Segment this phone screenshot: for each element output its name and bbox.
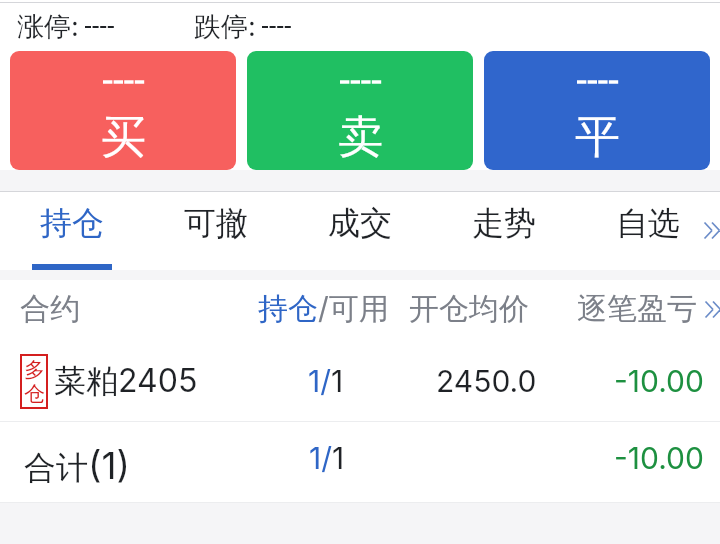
staticText: 跌停: [194, 10, 256, 44]
button[interactable]: 可撤 [144, 192, 288, 270]
button[interactable]: 买 [10, 51, 236, 170]
staticText: 可撤 [184, 203, 248, 243]
staticText: 1/1 [309, 440, 345, 476]
staticText: 2450.0 [436, 363, 537, 399]
button[interactable]: 走势 [432, 192, 576, 270]
staticText: 卖 [338, 109, 383, 166]
staticText: 合计(1) [24, 443, 131, 488]
staticText: 多 仓 [24, 357, 45, 407]
staticText: 持仓 [40, 203, 104, 243]
staticText: 持仓/可用 [258, 290, 389, 328]
button[interactable]: 成交 [288, 192, 432, 270]
staticText: 合约 [20, 290, 80, 328]
staticText: 成交 [328, 203, 392, 243]
staticText: -10.00 [614, 440, 704, 476]
staticText: 涨停: [17, 10, 79, 44]
staticText: 逐笔盈亏 [577, 290, 697, 328]
staticText: 1/1 [308, 363, 344, 399]
button[interactable]: 自选 [576, 192, 720, 270]
staticText: 买 [101, 109, 146, 166]
button[interactable]: More tabs [690, 192, 720, 270]
staticText: 自选 [616, 203, 680, 243]
button[interactable]: 多 仓 [0, 345, 720, 421]
staticText: -10.00 [614, 363, 704, 399]
button[interactable]: 持仓 [0, 192, 144, 270]
button[interactable]: 卖 [247, 51, 473, 170]
staticText: 菜粕2405 [54, 361, 198, 402]
staticText: 开仓均价 [409, 290, 529, 328]
button[interactable]: 平 [484, 51, 710, 170]
staticText: 平 [575, 109, 620, 166]
staticText: 走势 [472, 203, 536, 243]
